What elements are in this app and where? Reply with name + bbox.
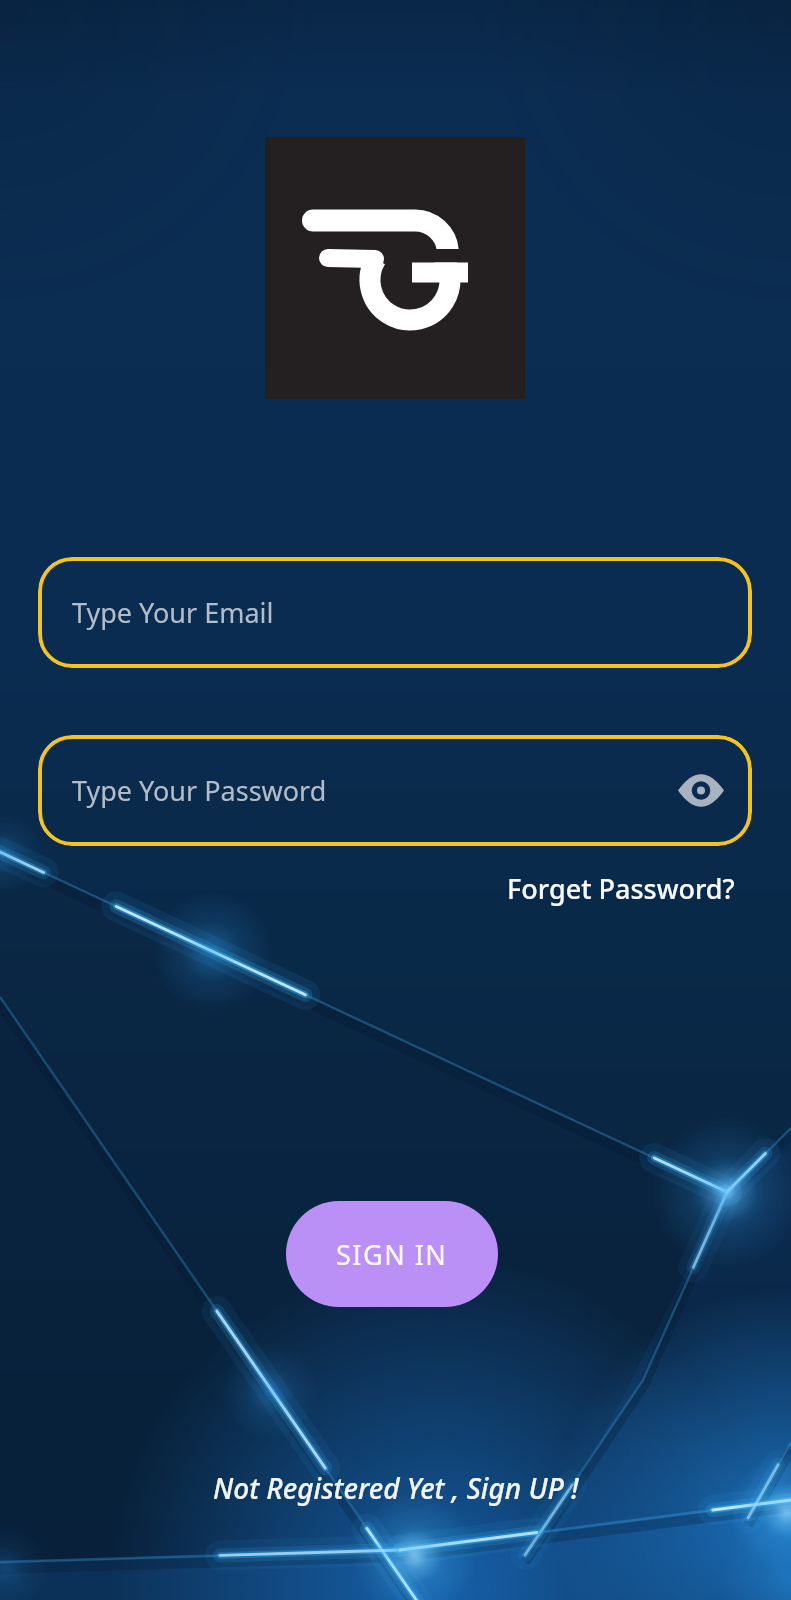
staticText: Type Your Password bbox=[72, 772, 327, 809]
button[interactable]: SIGN IN bbox=[286, 1201, 498, 1307]
button[interactable]: Forget Password? bbox=[507, 870, 735, 907]
button[interactable]: Type Your Password bbox=[38, 735, 752, 846]
button[interactable]: Type Your Email bbox=[38, 557, 752, 668]
button[interactable]: Not Registered Yet , Sign UP ! bbox=[213, 1469, 579, 1507]
staticText: Type Your Email bbox=[72, 594, 274, 631]
staticText: SIGN IN bbox=[336, 1236, 448, 1273]
